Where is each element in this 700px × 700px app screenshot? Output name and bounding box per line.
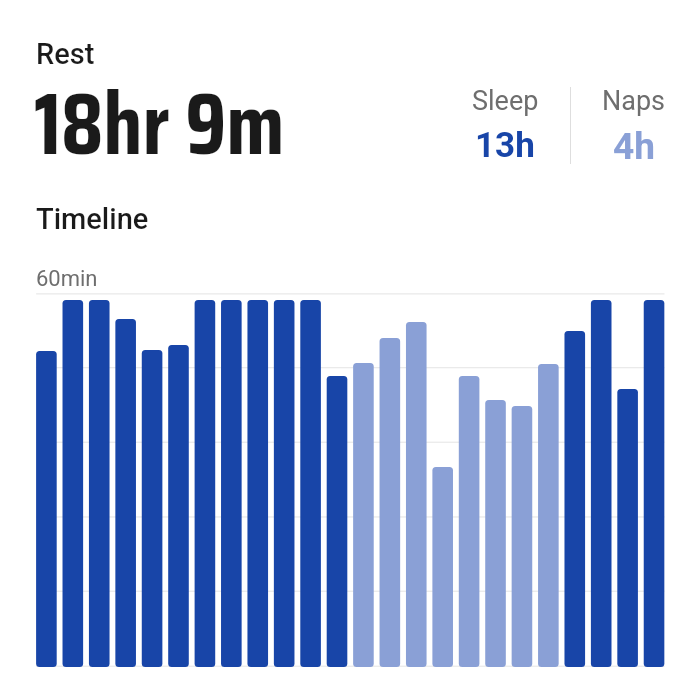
staticText: 60min <box>36 266 98 292</box>
button[interactable]: Naps <box>584 77 684 176</box>
staticText: Sleep <box>472 85 539 117</box>
staticText: Timeline <box>36 202 149 236</box>
button[interactable]: Sleep <box>455 77 555 174</box>
staticText: 18hr 9m <box>34 55 285 192</box>
staticText: Naps <box>602 85 666 117</box>
button[interactable]: Rest timeline chart <box>30 288 670 673</box>
staticText: 13h <box>475 125 535 166</box>
staticText: Rest <box>36 37 95 71</box>
staticText: 4h <box>613 125 655 168</box>
button[interactable]: Rest <box>20 29 320 216</box>
